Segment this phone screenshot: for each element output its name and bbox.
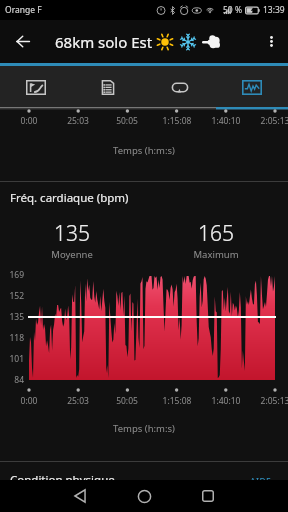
button[interactable]: More options <box>254 20 288 63</box>
staticText: 0:00 <box>6 395 52 406</box>
button[interactable]: Recent apps <box>186 480 230 512</box>
staticText: 118 <box>2 332 24 344</box>
staticText: 84 <box>2 374 24 386</box>
staticText: 169 <box>2 269 24 281</box>
staticText: 1:15:08 <box>154 115 200 126</box>
button[interactable]: Back <box>0 20 46 63</box>
staticText: 50:05 <box>104 395 150 406</box>
staticText: Maximum <box>176 248 256 261</box>
staticText: 135 <box>2 311 24 323</box>
staticText: Temps (h:m:s) <box>89 422 199 435</box>
button[interactable]: Home <box>122 480 166 512</box>
staticText: 1:40:10 <box>203 115 249 126</box>
staticText: 152 <box>2 290 24 302</box>
staticText: 135 <box>42 219 102 247</box>
staticText: AIDE <box>250 476 272 488</box>
staticText: 13:39 <box>263 4 285 16</box>
staticText: 25:03 <box>55 115 101 126</box>
button[interactable]: Back <box>58 480 102 512</box>
staticText: 25:03 <box>55 395 101 406</box>
staticText: 1:40:10 <box>203 395 249 406</box>
button[interactable]: Details <box>72 66 144 110</box>
button[interactable]: Laps <box>144 66 216 110</box>
staticText: 101 <box>2 353 24 365</box>
staticText: 68km solo Est <box>55 32 153 52</box>
staticText: 50 % <box>223 4 242 16</box>
staticText: 2:05:13 <box>252 115 288 126</box>
staticText: Moyenne <box>32 248 112 261</box>
button[interactable]: Charts <box>216 66 288 110</box>
staticText: Temps (h:m:s) <box>89 144 199 157</box>
button[interactable]: Condition physique <box>0 462 288 480</box>
staticText: 0:00 <box>6 115 52 126</box>
staticText: Condition physique <box>10 472 115 488</box>
staticText: Orange F <box>5 4 42 16</box>
staticText: 165 <box>186 219 246 247</box>
staticText: 50:05 <box>104 115 150 126</box>
staticText: Fréq. cardiaque (bpm) <box>10 190 129 206</box>
staticText: 2:05:13 <box>252 395 288 406</box>
staticText: 1:15:08 <box>154 395 200 406</box>
button[interactable]: Map <box>0 66 72 110</box>
